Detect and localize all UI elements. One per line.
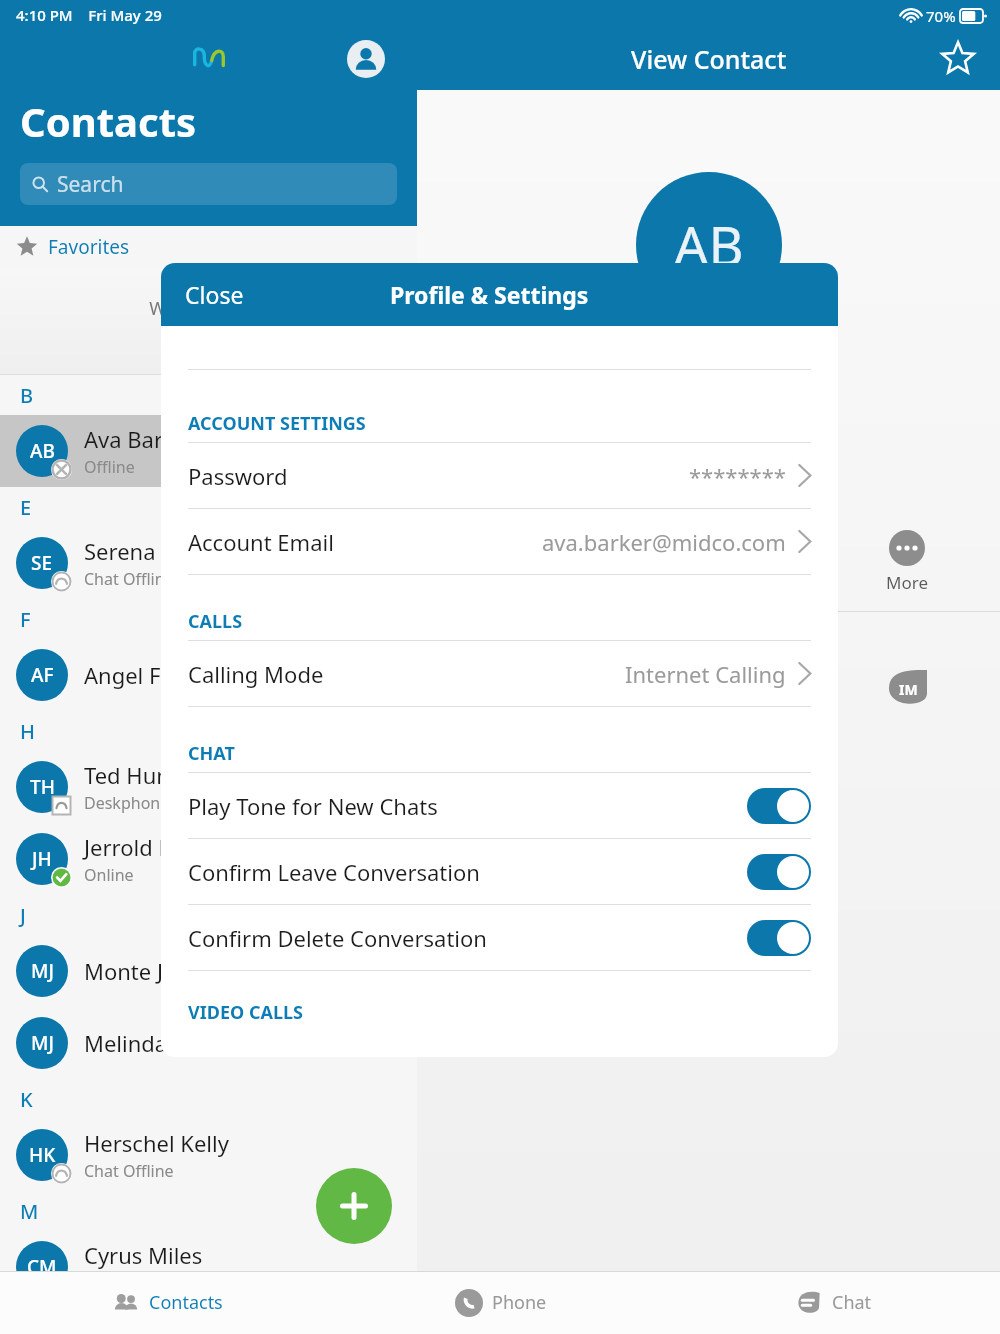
staticText: Chat [832, 1290, 872, 1315]
staticText: Monte Jo [84, 956, 177, 986]
staticText: Serena Ea [84, 536, 186, 566]
staticText: Offline [84, 456, 135, 478]
staticText: Profile & Settings [390, 279, 589, 310]
button[interactable]: Favorite [938, 39, 978, 79]
button[interactable]: MJ [0, 935, 417, 1007]
staticText: Search [57, 170, 124, 199]
staticText: JH [32, 846, 52, 872]
staticText: Close [185, 279, 244, 310]
staticText: SE [31, 550, 53, 576]
button[interactable]: Password [188, 443, 811, 508]
button[interactable]: CM [0, 1231, 417, 1303]
staticText: Herschel Kelly [84, 1128, 229, 1158]
button[interactable]: Profile and Settings [347, 40, 385, 78]
button[interactable]: Add contact [316, 1168, 392, 1244]
staticText: View Contact [631, 42, 787, 76]
button[interactable]: Phone [334, 1271, 667, 1334]
button[interactable]: MJ [0, 1007, 417, 1079]
staticText: Account Email [188, 527, 334, 557]
staticText: Angel Fle [84, 660, 179, 690]
button[interactable]: Chat [667, 1271, 1000, 1334]
staticText: When viewing ad [149, 296, 268, 346]
staticText: B [20, 382, 34, 409]
staticText: Confirm Delete Conversation [188, 923, 487, 953]
staticText: Calling Mode [188, 659, 324, 689]
button[interactable]: AB [0, 415, 417, 487]
staticText: 70% [926, 6, 956, 26]
staticText: IM [899, 680, 918, 699]
button[interactable]: TH [0, 751, 417, 823]
staticText: H [20, 718, 35, 745]
button[interactable]: Play Tone for New Chats [188, 773, 811, 838]
staticText: F [20, 606, 31, 633]
staticText: Chat Offline [84, 1160, 174, 1182]
staticText: ******** [689, 461, 786, 491]
staticText: More [886, 571, 928, 594]
staticText: MJ [31, 958, 54, 984]
staticText: K [20, 1086, 33, 1113]
staticText: Favorites [48, 234, 130, 260]
button[interactable]: Account Email [188, 509, 811, 574]
staticText: Confirm Leave Conversation [188, 857, 480, 887]
staticText: 4:10 PM Fri May 29 [16, 5, 162, 25]
staticText: CM [27, 1254, 57, 1280]
staticText: AB [674, 208, 744, 282]
staticText: AF [31, 662, 54, 688]
button[interactable]: Confirm Delete Conversation [188, 905, 811, 970]
staticText: Password [188, 461, 288, 491]
staticText: MJ [31, 1030, 54, 1056]
button[interactable]: Confirm Leave Conversation [188, 839, 811, 904]
staticText: CALLS [188, 609, 243, 634]
button[interactable]: Close [185, 279, 244, 310]
button[interactable]: Favorites [0, 226, 417, 268]
staticText: E [20, 494, 32, 521]
button[interactable]: HK [0, 1119, 417, 1191]
staticText: # [393, 852, 403, 872]
staticText: Phone [492, 1290, 547, 1315]
staticText: Jerrold H [84, 832, 175, 862]
staticText: Ava Barker [84, 424, 197, 454]
staticText: M [20, 1198, 39, 1225]
staticText: J [20, 902, 26, 929]
staticText: ava.barker@midco.com [542, 527, 786, 557]
staticText: Ted Hunt [84, 760, 178, 790]
staticText: Internet Calling [625, 659, 786, 689]
button[interactable]: Search [20, 163, 397, 205]
staticText: AB [30, 438, 55, 464]
staticText: TH [30, 774, 55, 800]
staticText: Contacts [149, 1290, 223, 1315]
button[interactable]: Calling Mode [188, 641, 811, 706]
staticText: Y [394, 784, 403, 804]
staticText: Contacts [20, 94, 197, 148]
staticText: Online [84, 864, 134, 886]
staticText: ACCOUNT SETTINGS [188, 411, 366, 436]
staticText: Deskphone [84, 792, 170, 814]
button[interactable]: Contacts [0, 1271, 334, 1334]
staticText: VIDEO CALLS [188, 1000, 303, 1025]
staticText: Melinda [84, 1028, 168, 1058]
staticText: Cyrus Miles [84, 1240, 203, 1270]
button[interactable]: SE [0, 527, 417, 599]
staticText: Play Tone for New Chats [188, 791, 438, 821]
staticText: HK [29, 1142, 56, 1168]
button[interactable]: JH [0, 823, 417, 895]
staticText: Chat Offline [84, 568, 174, 590]
button[interactable]: More [886, 530, 928, 594]
button[interactable]: AF [0, 639, 417, 711]
staticText: CHAT [188, 741, 235, 766]
